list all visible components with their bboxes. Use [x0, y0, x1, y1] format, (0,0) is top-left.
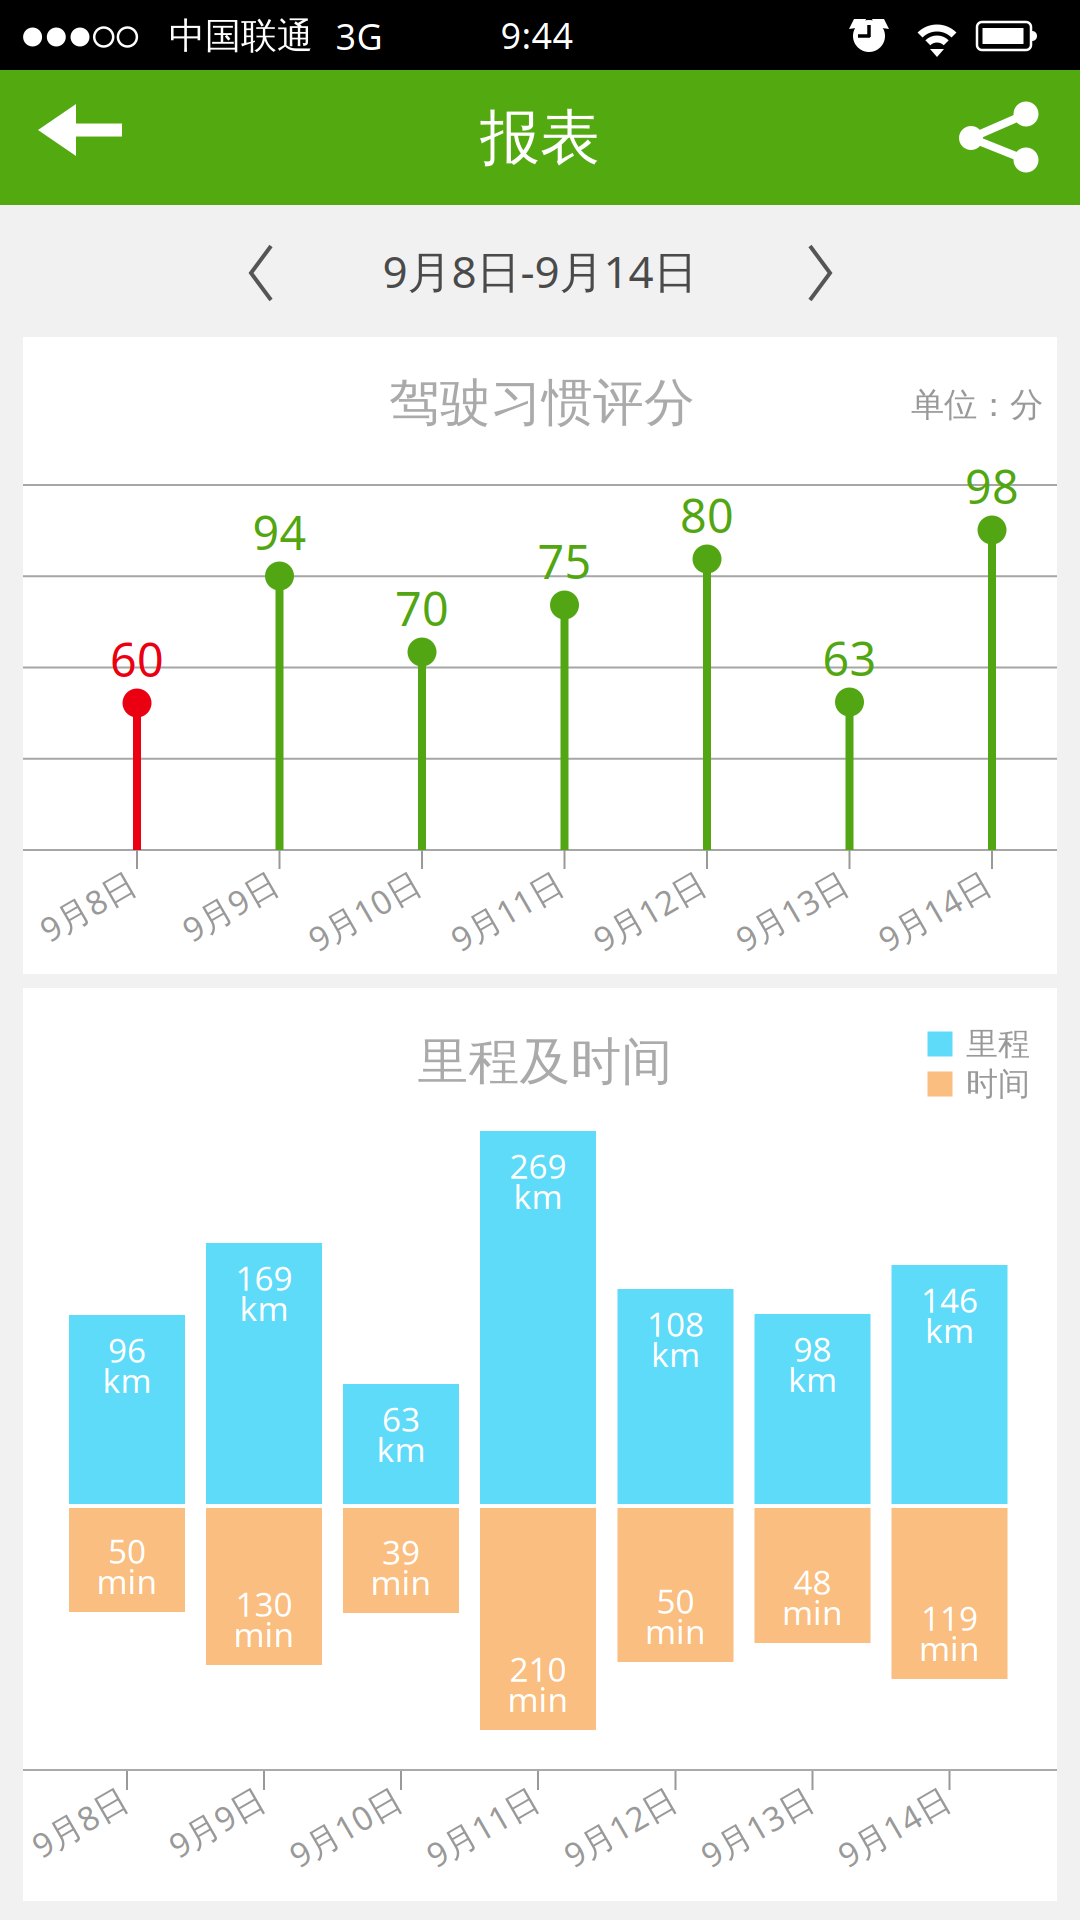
staticText: 98: [965, 455, 1019, 517]
staticText: 里程: [966, 1024, 1030, 1064]
staticText: 169: [235, 1256, 292, 1300]
staticText: 210: [509, 1647, 566, 1691]
staticText: km: [925, 1308, 974, 1352]
staticText: 单位：分: [911, 384, 1043, 425]
staticText: 中国联通: [169, 14, 313, 58]
staticText: 9月9日: [147, 1777, 251, 1821]
staticText: 9月10日: [284, 861, 407, 905]
staticText: 60: [110, 628, 164, 690]
staticText: km: [651, 1332, 700, 1376]
staticText: 94: [252, 501, 306, 563]
staticText: 98: [793, 1327, 831, 1371]
staticText: 75: [537, 530, 591, 592]
staticText: 9月10日: [265, 1777, 388, 1821]
staticText: min: [370, 1560, 431, 1604]
staticText: 时间: [966, 1064, 1030, 1104]
staticText: 里程及时间: [417, 1031, 672, 1093]
staticText: 119: [921, 1596, 978, 1640]
staticText: 108: [647, 1302, 704, 1346]
button[interactable]: Back: [38, 104, 122, 174]
staticText: 70: [395, 577, 449, 639]
staticText: 63: [822, 627, 876, 689]
staticText: 50: [656, 1579, 694, 1623]
staticText: 63: [382, 1397, 420, 1441]
staticText: 3G: [335, 12, 382, 60]
staticText: 9月12日: [539, 1777, 662, 1821]
staticText: 39: [382, 1530, 420, 1574]
staticText: 9月13日: [711, 861, 834, 905]
staticText: km: [102, 1358, 151, 1402]
staticText: 50: [108, 1529, 146, 1573]
staticText: min: [645, 1609, 706, 1653]
staticText: 48: [793, 1560, 831, 1604]
button[interactable]: Next week: [807, 244, 833, 302]
staticText: 9月14日: [854, 861, 977, 905]
staticText: 80: [680, 484, 734, 546]
staticText: 130: [235, 1582, 292, 1626]
staticText: 9月9日: [160, 861, 264, 905]
staticText: km: [513, 1174, 562, 1218]
staticText: 146: [921, 1278, 978, 1322]
staticText: 9月14日: [813, 1777, 936, 1821]
staticText: 96: [108, 1328, 146, 1372]
staticText: min: [96, 1559, 157, 1603]
staticText: min: [782, 1590, 843, 1634]
staticText: 报表: [480, 101, 600, 175]
staticText: 269: [509, 1144, 566, 1188]
staticText: 驾驶习惯评分: [389, 372, 695, 434]
staticText: km: [376, 1427, 425, 1471]
button[interactable]: Previous week: [248, 244, 274, 302]
staticText: km: [239, 1286, 288, 1330]
staticText: min: [919, 1626, 980, 1670]
staticText: 9月8日: [10, 1777, 114, 1821]
staticText: min: [233, 1612, 294, 1656]
staticText: min: [507, 1677, 568, 1721]
staticText: 9月8日-9月14日: [382, 242, 697, 300]
staticText: 9月8日: [18, 861, 122, 905]
staticText: km: [788, 1357, 837, 1401]
staticText: 9月11日: [426, 861, 549, 905]
staticText: 9月12日: [569, 861, 692, 905]
staticText: 9:44: [500, 11, 573, 59]
button[interactable]: Share: [960, 101, 1050, 181]
staticText: 9月13日: [676, 1777, 799, 1821]
staticText: 9月11日: [402, 1777, 525, 1821]
